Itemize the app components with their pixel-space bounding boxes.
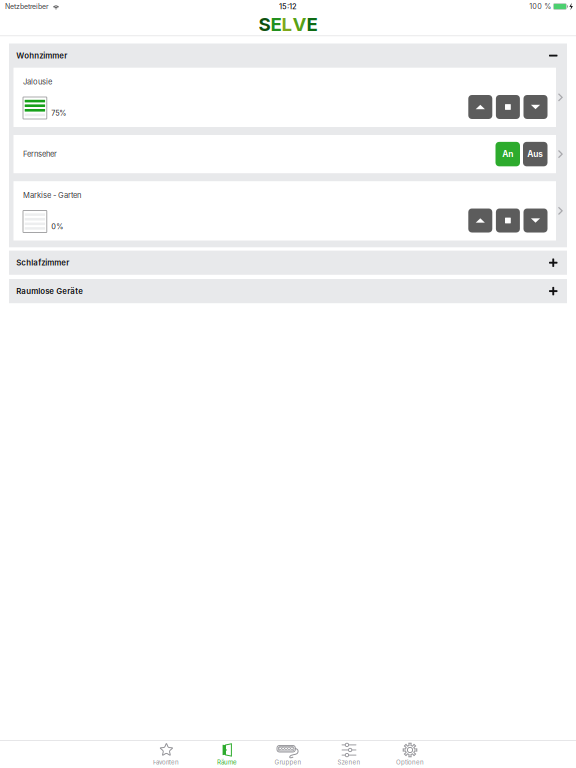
button[interactable]: Wohnzimmer — [9, 43, 567, 68]
button[interactable]: Auf — [468, 95, 492, 119]
staticText: S — [258, 13, 270, 35]
staticText: Aus — [527, 149, 543, 159]
button[interactable]: Ab — [523, 95, 547, 119]
button[interactable]: Auf — [468, 208, 492, 232]
button[interactable]: Jalousie — [13, 68, 556, 127]
staticText: E — [306, 13, 317, 35]
staticText: E — [270, 13, 281, 35]
staticText: 0% — [51, 222, 63, 231]
button[interactable]: Räume — [196, 741, 257, 768]
staticText: Szenen — [337, 759, 360, 766]
staticText: 15:12 — [279, 2, 297, 11]
button[interactable]: Szenen — [318, 741, 379, 768]
button[interactable]: Ab — [523, 208, 547, 232]
staticText: Netzbetreiber — [5, 2, 49, 11]
button[interactable]: Markise - Garten — [13, 181, 556, 240]
staticText: Räume — [217, 759, 237, 766]
button[interactable]: Gruppen — [257, 741, 318, 768]
staticText: Schlafzimmer — [16, 258, 69, 267]
staticText: Raumlose Geräte — [16, 286, 83, 296]
button[interactable]: An — [495, 142, 520, 166]
button[interactable]: Fernseher — [13, 135, 556, 173]
button[interactable]: Schlafzimmer — [9, 251, 567, 275]
button[interactable]: Stopp — [496, 95, 520, 119]
staticText: 100 % — [529, 2, 551, 11]
button[interactable]: Favoriten — [135, 741, 196, 768]
button[interactable]: Aus — [523, 142, 547, 166]
staticText: An — [502, 149, 513, 159]
staticText: Jalousie — [23, 77, 52, 86]
staticText: V — [292, 13, 306, 35]
staticText: Wohnzimmer — [16, 51, 67, 60]
staticText: Markise - Garten — [23, 191, 81, 200]
staticText: Gruppen — [274, 759, 301, 766]
staticText: Favoriten — [153, 759, 179, 766]
staticText: 75% — [51, 109, 66, 117]
staticText: L — [281, 13, 292, 35]
staticText: Optionen — [396, 759, 424, 766]
staticText: Fernseher — [23, 149, 57, 159]
button[interactable]: Stopp — [496, 208, 520, 232]
button[interactable]: Raumlose Geräte — [9, 279, 567, 303]
button[interactable]: Optionen — [379, 741, 440, 768]
